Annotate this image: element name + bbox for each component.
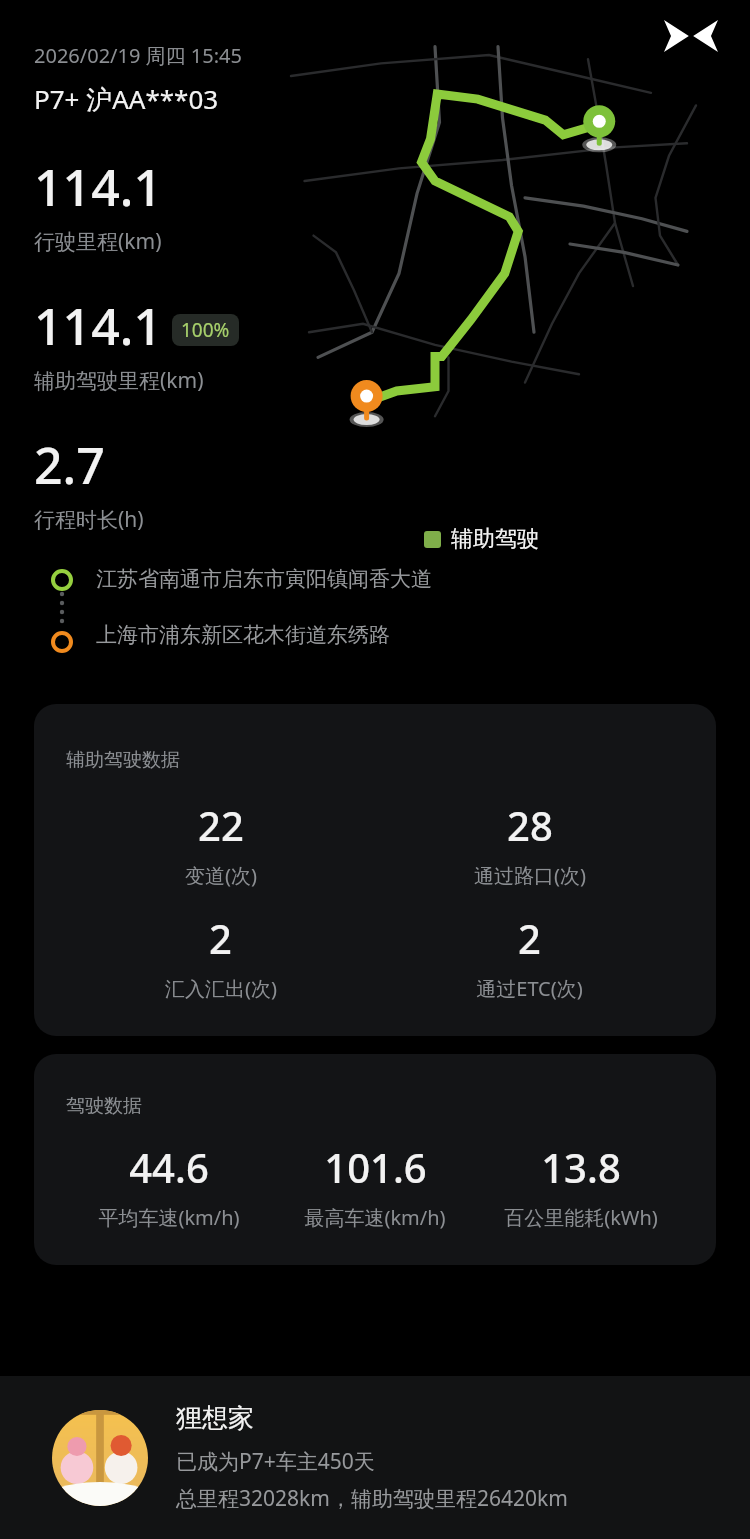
staticText: 总里程32028km，辅助驾驶里程26420km [176, 1484, 568, 1513]
staticText: 汇入汇出(次) [165, 975, 277, 1002]
staticText: 通过路口(次) [474, 862, 586, 889]
staticText: 22 [198, 798, 244, 852]
staticText: P7+ 沪AA***03 [34, 81, 219, 117]
staticText: 驾驶数据 [66, 1094, 142, 1118]
staticText: 变道(次) [185, 862, 257, 889]
staticText: 上海市浦东新区花木街道东绣路 [96, 622, 390, 648]
button[interactable]: 江苏省南通市启东市寅阳镇闻香大道 [52, 566, 750, 666]
staticText: 114.1 [34, 153, 162, 221]
button[interactable]: 狸想家 [0, 1376, 750, 1539]
staticText: 辅助驾驶里程(km) [34, 366, 204, 395]
button[interactable]: 辅助驾驶数据 [34, 704, 716, 1036]
staticText: 114.1 [34, 292, 162, 360]
staticText: 辅助驾驶数据 [66, 748, 180, 772]
button[interactable]: 驾驶数据 [34, 1054, 716, 1265]
staticText: 已成为P7+车主450天 [176, 1447, 375, 1476]
staticText: 最高车速(km/h) [304, 1204, 446, 1231]
staticText: 13.8 [541, 1140, 621, 1194]
staticText: 行程时长(h) [34, 505, 144, 534]
staticText: 通过ETC(次) [476, 975, 583, 1002]
staticText: 2026/02/19 周四 15:45 [34, 42, 242, 69]
staticText: 平均车速(km/h) [98, 1204, 240, 1231]
staticText: 江苏省南通市启东市寅阳镇闻香大道 [96, 566, 432, 592]
staticText: 2 [209, 911, 232, 965]
staticText: 辅助驾驶 [451, 525, 539, 553]
staticText: 101.6 [324, 1140, 427, 1194]
staticText: 2 [518, 911, 541, 965]
staticText: 100% [181, 317, 230, 343]
staticText: 2.7 [34, 431, 105, 499]
staticText: 44.6 [129, 1140, 209, 1194]
staticText: 28 [507, 798, 553, 852]
button[interactable]: XPeng logo [664, 16, 718, 56]
staticText: 狸想家 [176, 1402, 254, 1435]
staticText: 行驶里程(km) [34, 227, 162, 256]
staticText: 百公里能耗(kWh) [504, 1204, 658, 1231]
